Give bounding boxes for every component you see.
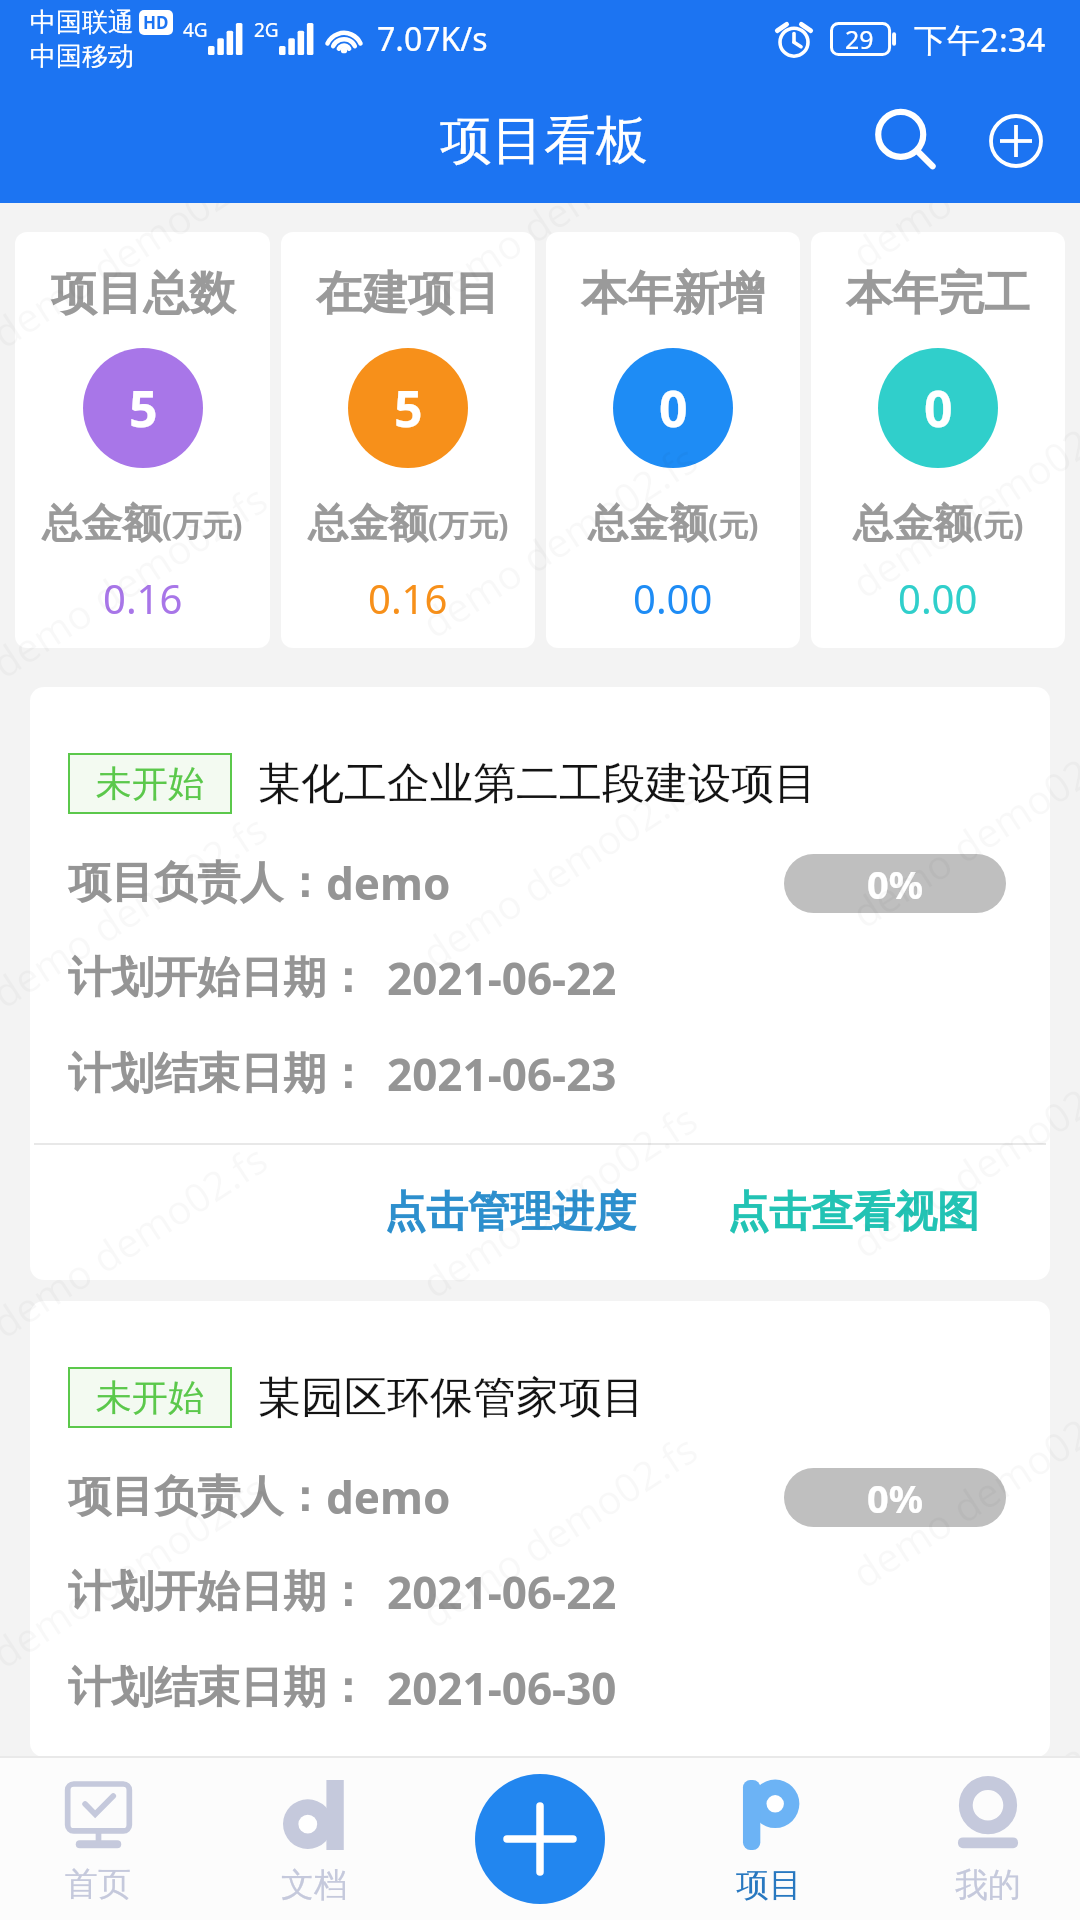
staticText: 下午2:34 [914, 17, 1046, 62]
staticText: (万元) [428, 504, 509, 545]
button[interactable]: 未开始 [30, 1301, 1050, 1757]
button[interactable]: 本年新增 [546, 232, 800, 648]
staticText: 2021-06-22 [387, 948, 617, 1008]
staticText: 2G [254, 17, 279, 43]
button[interactable]: 点击管理进度 [374, 1170, 646, 1255]
staticText: 点击管理进度 [384, 1186, 636, 1239]
staticText: 0.00 [633, 571, 713, 625]
staticText: 0.00 [898, 571, 978, 625]
staticText: demo demo02.fs [841, 391, 1080, 609]
staticText: demo demo02.fs [841, 1711, 1080, 1920]
staticText: HD [143, 11, 169, 34]
staticText: 计划开始日期： [68, 1565, 369, 1619]
staticText: 计划结束日期： [68, 1047, 369, 1101]
staticText: 0 [924, 374, 953, 442]
staticText: 计划结束日期： [68, 1661, 369, 1715]
staticText: 总金额 [588, 498, 708, 548]
button[interactable]: Add project [475, 1774, 605, 1904]
staticText: demo demo02.fs [411, 761, 707, 979]
staticText: demo demo02.fs [411, 1091, 707, 1309]
staticText: 我的 [955, 1864, 1021, 1906]
button[interactable]: 0% [784, 854, 1006, 913]
button[interactable]: 文档 [206, 1756, 422, 1920]
staticText: 项目负责人： [68, 856, 326, 910]
staticText: 项目负责人： [68, 1470, 326, 1524]
staticText: 总金额 [42, 498, 162, 548]
staticText: 文档 [281, 1864, 347, 1906]
staticText: 首页 [65, 1863, 131, 1905]
button[interactable]: 点击查看视图 [717, 1170, 989, 1255]
staticText: demo demo02.fs [0, 1791, 277, 1920]
staticText: 在建项目 [316, 265, 500, 323]
staticText: 本年完工 [846, 265, 1030, 323]
button[interactable]: 首页 [0, 1756, 206, 1920]
staticText: 中国联通 [30, 6, 134, 39]
staticText: demo demo02.fs [0, 801, 277, 1019]
staticText: 计划开始日期： [68, 951, 369, 1005]
staticText: 项目看板 [440, 108, 648, 174]
staticText: 0% [867, 1472, 924, 1524]
staticText: demo demo02.fs [841, 203, 1080, 279]
staticText: 项目 [736, 1864, 802, 1906]
staticText: 5 [394, 374, 423, 442]
staticText: demo demo02.fs [841, 1051, 1080, 1269]
staticText: demo demo02.fs [841, 1381, 1080, 1599]
staticText: demo demo02.fs [411, 1751, 707, 1920]
staticText: 总金额 [853, 498, 973, 548]
staticText: demo demo02.fs [0, 203, 277, 359]
staticText: demo demo02.fs [411, 1421, 707, 1639]
staticText: 4G [183, 17, 208, 43]
button[interactable]: 我的 [880, 1756, 1080, 1920]
staticText: 2021-06-22 [387, 1562, 617, 1622]
button[interactable]: 项目 [661, 1756, 877, 1920]
button[interactable]: 本年完工 [811, 232, 1065, 648]
staticText: 5 [129, 374, 158, 442]
staticText: 点击查看视图 [727, 1186, 979, 1239]
staticText: 0.16 [368, 571, 448, 625]
staticText: 未开始 [96, 1375, 204, 1420]
staticText: 总金额 [308, 498, 428, 548]
staticText: 2021-06-23 [387, 1044, 617, 1104]
staticText: 未开始 [96, 761, 204, 806]
staticText: demo demo02.fs [411, 203, 707, 319]
staticText: 0 [659, 374, 688, 442]
staticText: demo [326, 1467, 451, 1527]
staticText: 29 [845, 22, 874, 56]
staticText: demo demo02.fs [841, 721, 1080, 939]
staticText: 本年新增 [581, 265, 765, 323]
staticText: demo demo02.fs [411, 431, 707, 649]
staticText: 项目总数 [51, 265, 235, 323]
staticText: (元) [973, 504, 1024, 545]
button[interactable]: Search [868, 103, 944, 179]
staticText: 0% [867, 858, 924, 910]
button[interactable]: 0% [784, 1468, 1006, 1527]
staticText: demo [326, 853, 451, 913]
staticText: demo demo02.fs [0, 1461, 277, 1679]
staticText: 某园区环保管家项目 [258, 1371, 645, 1425]
staticText: (万元) [162, 504, 243, 545]
button[interactable]: 在建项目 [281, 232, 535, 648]
staticText: 2021-06-30 [387, 1658, 617, 1718]
staticText: 某化工企业第二工段建设项目 [258, 757, 817, 811]
staticText: (元) [708, 504, 759, 545]
staticText: demo demo02.fs [0, 471, 277, 689]
button[interactable]: 未开始 [30, 687, 1050, 1280]
button[interactable]: Add [978, 103, 1054, 179]
staticText: 7.07K/s [377, 17, 488, 61]
staticText: 中国移动 [30, 40, 134, 73]
button[interactable]: 项目总数 [15, 232, 270, 648]
staticText: 0.16 [103, 571, 183, 625]
staticText: demo demo02.fs [0, 1131, 277, 1349]
